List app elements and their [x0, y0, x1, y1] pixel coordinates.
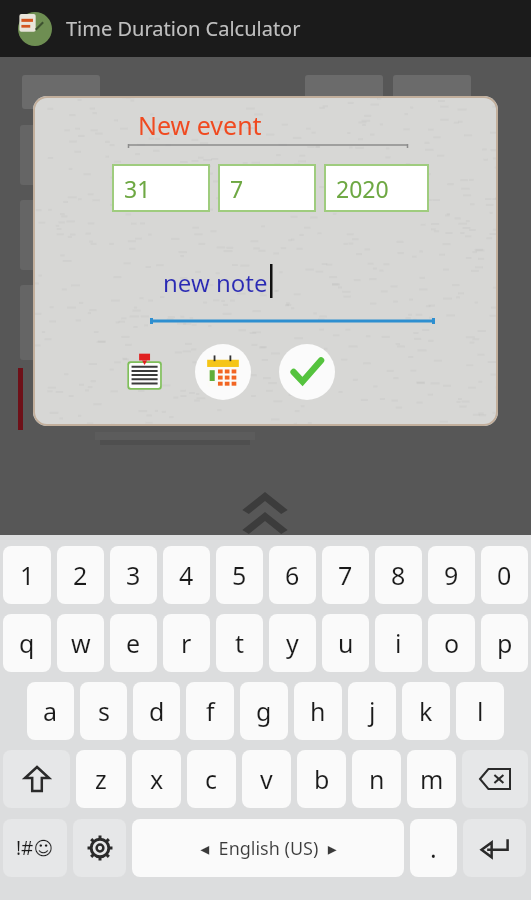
staticText: c [205, 762, 218, 796]
button[interactable]: 4 [163, 546, 210, 604]
button[interactable]: x [132, 750, 181, 808]
button[interactable]: 31 [112, 164, 210, 212]
button[interactable]: s [80, 682, 127, 740]
button[interactable]: t [216, 614, 263, 672]
staticText: z [95, 762, 107, 796]
button[interactable]: q [3, 614, 51, 672]
staticText: 2020 [336, 173, 389, 204]
button[interactable]: b [297, 750, 346, 808]
button[interactable]: z [76, 750, 126, 808]
staticText: 1 [20, 558, 35, 592]
staticText: a [43, 694, 58, 728]
button[interactable]: 2 [57, 546, 104, 604]
staticText: w [71, 626, 91, 660]
staticText: 8 [391, 558, 406, 592]
staticText: new note [163, 266, 268, 299]
staticText: Time Duration Calculator [66, 15, 301, 42]
staticText: r [181, 626, 192, 660]
button[interactable]: 6 [269, 546, 316, 604]
button[interactable]: f [186, 682, 234, 740]
button[interactable]: 7 [218, 164, 316, 212]
button[interactable]: u [322, 614, 369, 672]
staticText: !#☺ [16, 835, 54, 861]
staticText: . [430, 831, 437, 865]
staticText: h [310, 694, 326, 728]
staticText: y [286, 626, 299, 660]
button[interactable]: r [163, 614, 210, 672]
staticText: 7 [338, 558, 353, 592]
button[interactable]: a [27, 682, 74, 740]
staticText: d [149, 694, 165, 728]
button[interactable]: Confirm [279, 344, 335, 400]
staticText: New event [138, 108, 262, 142]
button[interactable]: w [57, 614, 104, 672]
staticText: n [369, 762, 385, 796]
staticText: 0 [497, 558, 512, 592]
staticText: x [150, 762, 164, 796]
button[interactable]: Backspace [462, 750, 528, 808]
button[interactable]: m [407, 750, 456, 808]
button[interactable]: Pick date [195, 344, 251, 400]
button[interactable]: 9 [428, 546, 475, 604]
staticText: 7 [230, 173, 244, 204]
staticText: m [420, 762, 444, 796]
staticText: i [395, 626, 402, 660]
staticText: ◂ English (US) ▸ [200, 836, 337, 861]
button[interactable]: d [133, 682, 180, 740]
button[interactable]: 5 [216, 546, 263, 604]
staticText: e [126, 626, 141, 660]
staticText: 2 [73, 558, 88, 592]
staticText: o [444, 626, 460, 660]
button[interactable]: o [428, 614, 475, 672]
staticText: b [314, 762, 330, 796]
button[interactable]: Settings [73, 819, 126, 877]
button[interactable]: e [110, 614, 157, 672]
button[interactable]: 1 [3, 546, 51, 604]
button[interactable]: j [348, 682, 396, 740]
staticText: 31 [124, 173, 151, 204]
staticText: 5 [232, 558, 247, 592]
button[interactable]: 3 [110, 546, 157, 604]
staticText: g [256, 694, 272, 728]
staticText: 3 [126, 558, 141, 592]
button[interactable]: k [402, 682, 450, 740]
staticText: 4 [179, 558, 194, 592]
button[interactable]: 7 [322, 546, 369, 604]
staticText: j [369, 694, 376, 728]
staticText: p [497, 626, 513, 660]
button[interactable]: g [240, 682, 288, 740]
button[interactable]: 2020 [324, 164, 429, 212]
button[interactable]: Expand [238, 488, 292, 534]
button[interactable]: p [481, 614, 528, 672]
button[interactable]: ◂ English (US) ▸ [132, 819, 404, 877]
staticText: k [419, 694, 433, 728]
staticText: s [98, 694, 110, 728]
button[interactable]: v [242, 750, 291, 808]
button[interactable]: 0 [481, 546, 528, 604]
button[interactable]: Symbols [3, 819, 67, 877]
staticText: 6 [285, 558, 300, 592]
staticText: f [206, 694, 215, 728]
staticText: l [477, 694, 484, 728]
button[interactable]: l [456, 682, 504, 740]
button[interactable]: 8 [375, 546, 422, 604]
staticText: t [235, 626, 245, 660]
button[interactable]: c [187, 750, 236, 808]
button[interactable]: Shift [3, 750, 70, 808]
button[interactable]: . [410, 819, 457, 877]
staticText: u [338, 626, 354, 660]
button[interactable]: n [352, 750, 401, 808]
button[interactable]: Enter [463, 819, 526, 877]
button[interactable]: i [375, 614, 422, 672]
staticText: 9 [444, 558, 459, 592]
button[interactable]: h [294, 682, 342, 740]
staticText: v [260, 762, 273, 796]
staticText: q [19, 626, 35, 660]
button[interactable]: y [269, 614, 316, 672]
